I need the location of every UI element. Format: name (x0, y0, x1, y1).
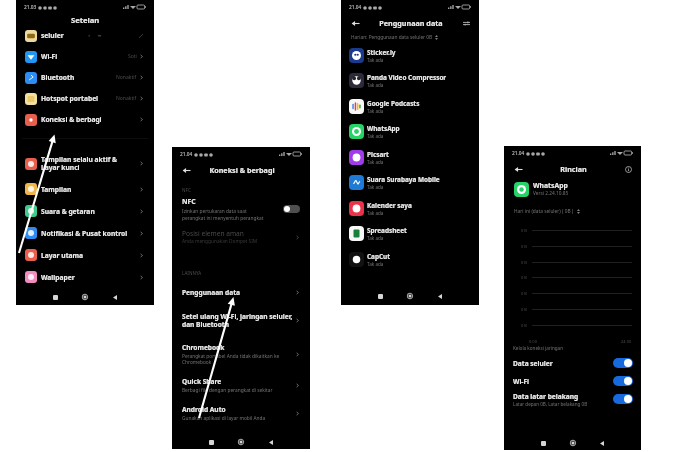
button[interactable]: NFC toggle (283, 205, 300, 213)
button[interactable]: seluler (16, 25, 154, 46)
staticText: Bluetooth (41, 73, 75, 82)
staticText: NFC (182, 197, 196, 206)
staticText: Tak ada (367, 184, 384, 190)
staticText: 21.03 (24, 4, 37, 11)
button[interactable]: Panda Video Compressor (341, 68, 479, 93)
button[interactable]: Home (78, 290, 92, 304)
staticText: Koneksi & berbagi (41, 115, 102, 124)
button[interactable]: Recents (204, 435, 218, 449)
staticText: Layar utama (41, 251, 84, 260)
button[interactable]: Notifikasi & Pusat kontrol (16, 222, 154, 244)
staticText: Panda Video Compressor (367, 73, 447, 82)
staticText: Suara Surabaya Mobile (367, 175, 440, 184)
staticText: seluler (41, 31, 64, 40)
staticText: Android Auto (182, 405, 226, 414)
staticText: Tak ada (367, 235, 384, 241)
staticText: Penggunaan data (182, 288, 241, 297)
button[interactable]: Hotspot portabel (16, 88, 154, 109)
button[interactable]: Koneksi & berbagi (16, 109, 154, 130)
button[interactable]: Data seluler toggle (613, 358, 633, 368)
staticText: 0 B (521, 275, 529, 280)
staticText: 21.04 (349, 4, 362, 11)
staticText: Spreadsheet (367, 226, 407, 235)
staticText: Tampilan selalu aktif & Layar kunci (41, 155, 117, 172)
button[interactable]: Home (234, 435, 248, 449)
staticText: Suara & getaran (41, 207, 95, 216)
button[interactable]: Sticker.ly (341, 42, 479, 68)
staticText: LAINNYA (182, 270, 202, 276)
button[interactable]: Wi-Fi toggle (613, 376, 633, 386)
button[interactable]: Kalender saya (341, 195, 479, 221)
button[interactable]: Chromebook (182, 343, 300, 365)
button[interactable]: Quick Share (182, 377, 300, 394)
button[interactable]: Back (433, 289, 447, 303)
button[interactable]: Wallpaper (16, 266, 154, 288)
staticText: Hari ini (data seluler) ( 0B ) (514, 208, 574, 215)
staticText: Rincian (524, 164, 623, 174)
button[interactable]: Google Podcasts (341, 93, 479, 119)
button[interactable]: Bluetooth (16, 67, 154, 88)
staticText: Izinkan pertukaran data saat perangkat i… (182, 208, 264, 221)
button[interactable]: Data seluler (504, 354, 641, 372)
staticText: Posisi elemen aman (182, 229, 244, 238)
staticText: Tak ada (367, 159, 384, 165)
staticText: Berbagi file dengan perangkat di sekitar (182, 387, 273, 394)
staticText: Tak ada (367, 210, 384, 216)
staticText: 0 B (521, 260, 529, 265)
button[interactable]: Back (181, 165, 192, 176)
button[interactable]: Suara & getaran (16, 200, 154, 222)
button[interactable]: Recents (536, 436, 550, 450)
button[interactable]: Spreadsheet (341, 221, 479, 246)
staticText: Kalender saya (367, 201, 412, 210)
button[interactable]: Suara Surabaya Mobile (341, 170, 479, 195)
button[interactable]: Home (403, 289, 417, 303)
staticText: Google Podcasts (367, 99, 420, 108)
staticText: 0 B (521, 323, 529, 328)
staticText: Wi-Fi (513, 377, 530, 386)
button[interactable]: Wi-Fi (504, 372, 641, 390)
staticText: Chromebook (182, 343, 225, 352)
button[interactable]: Info (623, 164, 634, 175)
staticText: Tak ada (367, 133, 384, 139)
button[interactable]: Wi-Fi (16, 46, 154, 67)
staticText: Penggunaan data (361, 18, 461, 28)
button[interactable]: Back (350, 18, 361, 29)
button[interactable]: Setel ulang Wi-Fi, jaringan seluler, dan… (182, 312, 300, 329)
staticText: Versi 2.24.10.85 (533, 190, 569, 197)
staticText: Kelola koneksi jaringan (513, 345, 563, 351)
button[interactable]: Home (566, 436, 580, 450)
staticText: Sticker.ly (367, 48, 396, 57)
button[interactable]: Tampilan selalu aktif & Layar kunci (16, 149, 154, 178)
button[interactable]: Android Auto (182, 405, 300, 422)
button[interactable]: CapCut (341, 246, 479, 272)
staticText: NFC (182, 187, 191, 193)
staticText: Setelan (71, 15, 100, 25)
button[interactable]: NFC (182, 197, 300, 221)
button[interactable]: Data latar belakang toggle (613, 394, 633, 404)
button[interactable]: Posisi elemen aman (182, 229, 300, 245)
button[interactable]: Data latar belakang (504, 390, 641, 408)
button[interactable]: Picsart (341, 144, 479, 170)
button[interactable]: Back (513, 164, 524, 175)
button[interactable]: Back (264, 435, 278, 449)
staticText: Wi-Fi (41, 52, 58, 61)
button[interactable]: Tampilan (16, 178, 154, 200)
staticText: 24.00 (621, 339, 632, 344)
button[interactable]: WhatsApp (341, 119, 479, 144)
button[interactable]: Layar utama (16, 244, 154, 266)
staticText: Notifikasi & Pusat kontrol (41, 229, 128, 238)
staticText: Nonaktif (116, 95, 137, 102)
button[interactable]: Penggunaan data (182, 288, 300, 297)
button[interactable]: Recents (373, 289, 387, 303)
staticText: 0 B (521, 244, 529, 249)
staticText: Koneksi & berbagi (192, 165, 292, 175)
staticText: Anda menggunakan Dompet SIM (182, 238, 258, 245)
button[interactable]: Back (595, 436, 609, 450)
button[interactable]: Back (108, 290, 122, 304)
staticText: Nonaktif (116, 74, 137, 81)
button[interactable]: Sort (461, 18, 472, 29)
staticText: Tampilan (41, 185, 72, 194)
button[interactable]: Recents (48, 290, 62, 304)
staticText: Picsart (367, 150, 389, 159)
staticText: Gunakan aplikasi di layar mobil Anda (182, 415, 266, 422)
